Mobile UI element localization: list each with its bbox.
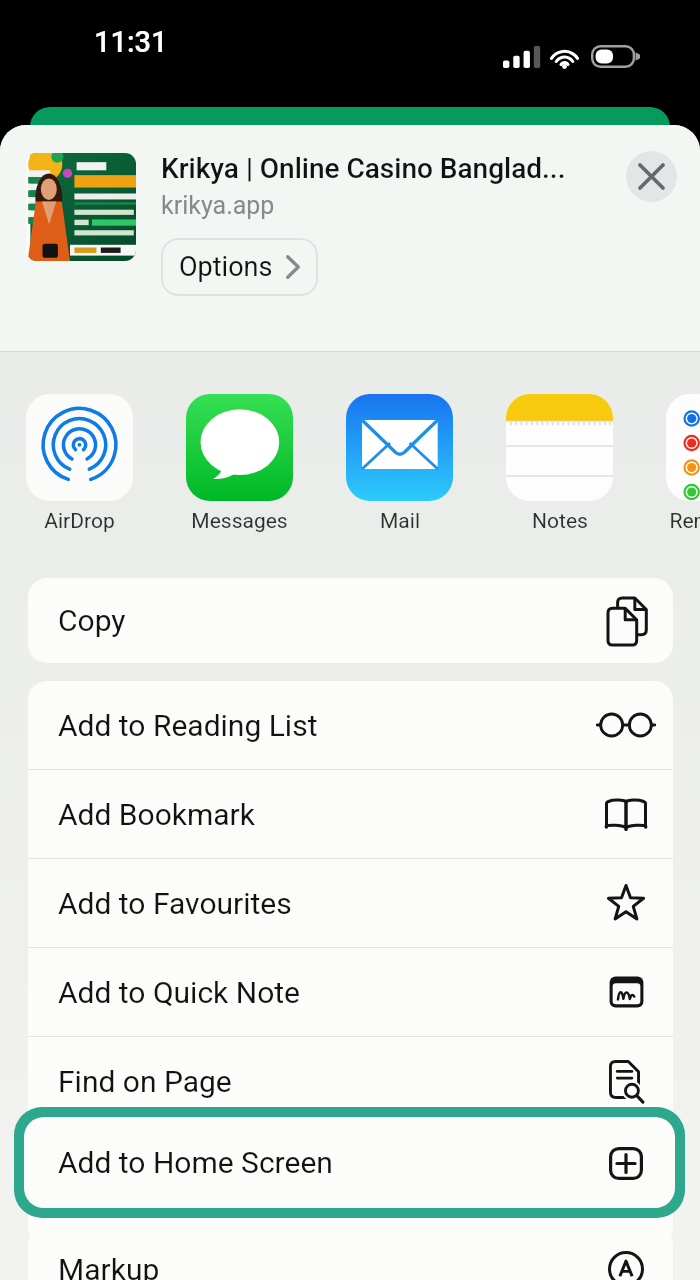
staticText: AirDrop [44,509,115,534]
button[interactable]: Add Bookmark [28,770,673,858]
staticText: Copy [58,603,597,638]
button[interactable]: Add to Home Screen [24,1117,675,1208]
button[interactable]: Notes [506,394,613,534]
button[interactable]: Mail [346,394,453,534]
staticText: 11:31 [94,25,168,59]
button[interactable]: Add to Reading List [28,681,673,769]
staticText: Messages [191,509,288,534]
staticText: Markup [58,1252,597,1280]
button[interactable]: Find on Page [28,1037,673,1125]
button[interactable]: Copy [28,578,673,663]
staticText: Options [179,251,273,283]
staticText: Add to Reading List [58,708,597,743]
staticText: Add to Quick Note [58,975,597,1010]
staticText: Krikya | Online Casino Banglad... [161,152,581,185]
button[interactable]: Add to Favourites [28,859,673,947]
staticText: Add to Home Screen [58,1145,597,1180]
staticText: Add to Favourites [58,886,597,921]
button[interactable]: Options [161,238,318,296]
staticText: krikya.app [161,191,275,220]
button[interactable]: Reminders [666,394,700,534]
button[interactable]: Markup [28,1225,673,1280]
button[interactable]: Add to Quick Note [28,948,673,1036]
staticText: Add Bookmark [58,797,597,832]
staticText: Mail [380,509,420,534]
button[interactable]: Close [626,151,677,202]
staticText: Reminders [669,509,700,534]
button[interactable]: Messages [186,394,293,534]
staticText: Notes [532,509,588,534]
staticText: Find on Page [58,1064,597,1099]
button[interactable]: AirDrop [26,394,133,534]
